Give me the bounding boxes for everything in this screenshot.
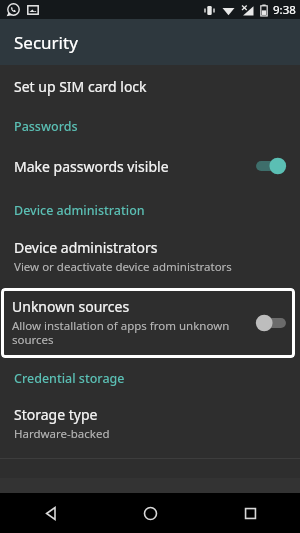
button[interactable]: Recent apps <box>200 493 300 533</box>
staticText: Passwords <box>14 118 78 135</box>
staticText: Device administration <box>14 202 145 219</box>
button[interactable]: Back <box>0 493 100 533</box>
button[interactable]: Toggle off <box>254 312 288 334</box>
button[interactable]: Device administrators <box>0 228 300 286</box>
button[interactable]: Storage type <box>0 396 300 453</box>
staticText: Unknown sources <box>12 297 130 316</box>
staticText: View or deactivate device administrators <box>14 259 232 275</box>
staticText: Device administrators <box>14 238 158 257</box>
button[interactable]: Home <box>100 493 200 533</box>
staticText: Make passwords visible <box>14 157 169 176</box>
button[interactable]: Unknown sources <box>1 288 295 358</box>
staticText: Credential storage <box>14 370 125 387</box>
button[interactable]: Set up SIM card lock <box>0 65 300 109</box>
button[interactable]: Toggle on <box>254 155 288 177</box>
staticText: Set up SIM card lock <box>14 77 147 96</box>
staticText: 9:38 <box>273 2 296 18</box>
button[interactable]: Make passwords visible <box>0 144 300 189</box>
staticText: Storage type <box>14 405 98 424</box>
staticText: Security <box>14 31 78 54</box>
staticText: Allow installation of apps from unknown … <box>12 318 248 348</box>
staticText: Hardware-backed <box>14 426 110 442</box>
